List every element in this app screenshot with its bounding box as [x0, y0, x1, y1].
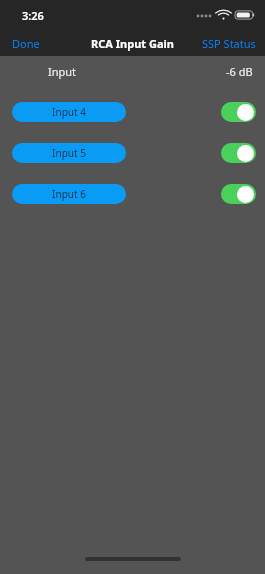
button[interactable]: Input 5 — [12, 143, 126, 163]
staticText: Input — [48, 64, 77, 79]
staticText: Input 6 — [52, 187, 86, 201]
button[interactable]: Input 6 enabled toggle — [221, 184, 256, 204]
button[interactable]: Input 4 — [12, 102, 126, 122]
button[interactable]: Done — [0, 32, 48, 55]
staticText: RCA Input Gain — [91, 36, 174, 51]
button[interactable]: SSP Status — [194, 32, 265, 55]
staticText: 3:26 — [22, 8, 44, 23]
button[interactable]: Input 5 enabled toggle — [221, 143, 256, 163]
staticText: Input 4 — [52, 105, 86, 119]
button[interactable]: Input 4 enabled toggle — [221, 102, 256, 122]
button[interactable]: Input 6 — [12, 184, 126, 204]
staticText: SSP Status — [202, 36, 256, 51]
staticText: -6 dB — [226, 64, 253, 79]
staticText: Done — [12, 36, 40, 51]
staticText: Input 5 — [52, 146, 86, 160]
